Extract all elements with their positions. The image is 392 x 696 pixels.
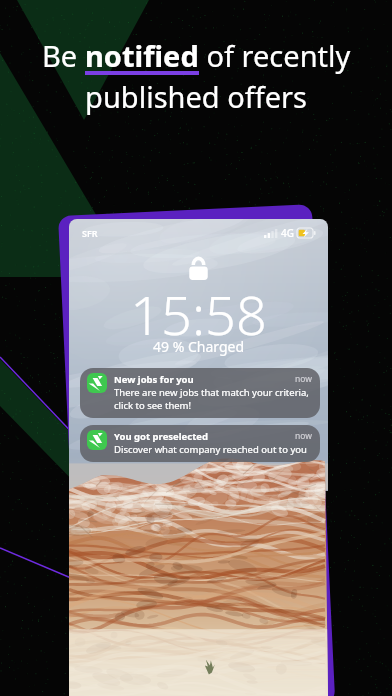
- button[interactable]: Welcome to the Jungle: [80, 368, 320, 418]
- staticText: Be: [42, 36, 85, 75]
- staticText: 15:58: [69, 277, 328, 351]
- staticText: of recently: [199, 36, 351, 75]
- staticText: New jobs for you: [114, 373, 295, 386]
- button[interactable]: Welcome to the Jungle: [80, 425, 320, 462]
- other: Welcome to the Jungle: [87, 430, 107, 450]
- other: Welcome to the Jungle: [87, 373, 107, 393]
- staticText: You got preselected: [114, 430, 295, 443]
- staticText: published offers: [85, 77, 307, 116]
- staticText: 4G: [281, 226, 294, 240]
- staticText: now: [295, 373, 312, 385]
- staticText: notified: [85, 36, 199, 75]
- staticText: 49 % Charged: [69, 337, 328, 356]
- staticText: SFR: [82, 227, 98, 239]
- staticText: now: [295, 430, 312, 442]
- staticText: Discover what company reached out to you: [114, 443, 307, 456]
- staticText: There are new jobs that match your crite…: [114, 386, 312, 412]
